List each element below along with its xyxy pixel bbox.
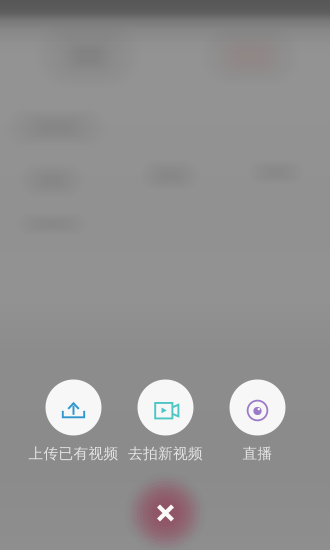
button[interactable]: 上传已有视频	[27, 379, 119, 462]
staticText: 上传已有视频	[28, 444, 118, 462]
button[interactable]: Close	[119, 467, 211, 550]
staticText: 直播	[242, 444, 272, 462]
button[interactable]: 去拍新视频	[119, 379, 211, 462]
button[interactable]: 直播	[211, 379, 303, 462]
staticText: 去拍新视频	[128, 444, 203, 462]
